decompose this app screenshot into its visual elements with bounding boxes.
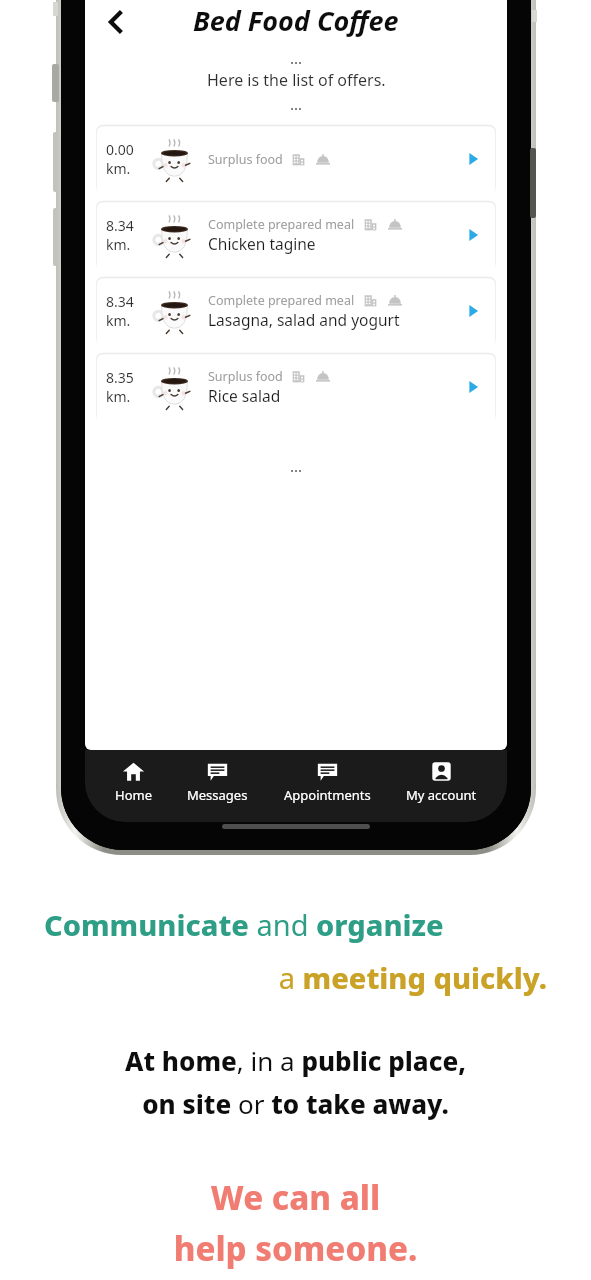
staticText: help someone.	[0, 1226, 591, 1271]
staticText: Here is the list of offers.	[207, 69, 386, 91]
staticText: 8.34	[106, 216, 134, 235]
staticText: My account	[406, 786, 477, 804]
button[interactable]: Open offer	[450, 352, 496, 422]
staticText: Complete prepared meal	[208, 292, 355, 309]
staticText: At home, in a public place,	[0, 1043, 591, 1078]
button[interactable]: Messages	[181, 758, 254, 806]
staticText: Surplus food	[208, 368, 283, 385]
button[interactable]: 8.34	[96, 276, 496, 346]
button[interactable]: Open offer	[450, 124, 496, 194]
staticText: a meeting quickly.	[0, 958, 547, 997]
staticText: My account	[406, 786, 477, 804]
button[interactable]: Open offer	[450, 200, 496, 270]
staticText: Appointments	[284, 786, 371, 804]
staticText: 0.00	[106, 140, 134, 159]
staticText: km.	[106, 235, 131, 254]
button[interactable]: 8.35	[96, 352, 496, 422]
staticText: on site or to take away.	[0, 1086, 591, 1121]
staticText: Appointments	[284, 786, 371, 804]
staticText: Bed Food Coffee	[193, 2, 399, 39]
staticText: Communicate and organize	[44, 905, 591, 944]
staticText: Surplus food	[208, 151, 283, 168]
staticText: Complete prepared meal	[208, 216, 355, 233]
button[interactable]: Home	[109, 758, 158, 806]
button[interactable]: Appointments	[278, 758, 377, 806]
staticText: 8.34	[106, 292, 134, 311]
button[interactable]: Appointments	[278, 758, 377, 806]
staticText: km.	[106, 159, 131, 178]
staticText: Home	[115, 786, 152, 804]
staticText: ...	[290, 94, 303, 114]
staticText: Chicken tagine	[208, 233, 316, 254]
staticText: Home	[115, 786, 152, 804]
staticText: ...	[290, 48, 303, 68]
button[interactable]: Back	[95, 0, 139, 44]
staticText: ...	[290, 456, 303, 476]
staticText: Messages	[187, 786, 248, 804]
staticText: Messages	[187, 786, 248, 804]
button[interactable]: Messages	[181, 758, 254, 806]
staticText: 8.35	[106, 368, 134, 387]
staticText: Lasagna, salad and yogurt	[208, 309, 400, 330]
button[interactable]: Home	[109, 758, 158, 806]
button[interactable]: 8.34	[96, 200, 496, 270]
staticText: We can all	[0, 1175, 591, 1220]
staticText: km.	[106, 387, 131, 406]
button[interactable]: 0.00	[96, 124, 496, 194]
staticText: Rice salad	[208, 385, 281, 406]
button[interactable]: My account	[400, 758, 483, 806]
button[interactable]: My account	[400, 758, 483, 806]
button[interactable]: Open offer	[450, 276, 496, 346]
staticText: km.	[106, 311, 131, 330]
